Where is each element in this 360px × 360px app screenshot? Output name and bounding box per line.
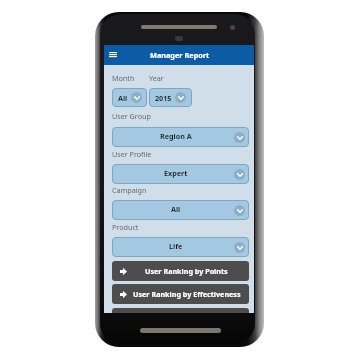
staticText: User Ranking by Points	[145, 266, 228, 276]
button[interactable]: All	[112, 88, 147, 107]
staticText: User Ranking by Effectiveness	[133, 289, 241, 299]
staticText: Region A	[160, 131, 192, 141]
button[interactable]: Region A	[112, 127, 249, 147]
staticText: Life	[169, 241, 183, 251]
button[interactable]: Open navigation menu	[104, 45, 122, 65]
button[interactable]: User Ranking by Effectiveness	[112, 284, 249, 304]
staticText: User Profile	[112, 149, 152, 159]
button[interactable]: User Ranking by Revenue	[112, 308, 249, 313]
staticText: Expert	[164, 168, 188, 178]
button[interactable]: Expert	[112, 164, 249, 184]
staticText: User Group	[112, 111, 151, 121]
button[interactable]: User Ranking by Points	[112, 261, 249, 281]
staticText: 2015	[155, 93, 172, 103]
staticText: Manager Report	[150, 50, 210, 60]
staticText: Product	[112, 222, 139, 232]
button[interactable]: Life	[112, 237, 249, 257]
button[interactable]: 2015	[149, 88, 192, 107]
staticText: Year	[149, 73, 164, 83]
staticText: Campaign	[112, 185, 147, 195]
staticText: All	[171, 204, 181, 214]
staticText: All	[118, 93, 128, 103]
button[interactable]: All	[112, 200, 249, 220]
staticText: Month	[112, 73, 135, 83]
